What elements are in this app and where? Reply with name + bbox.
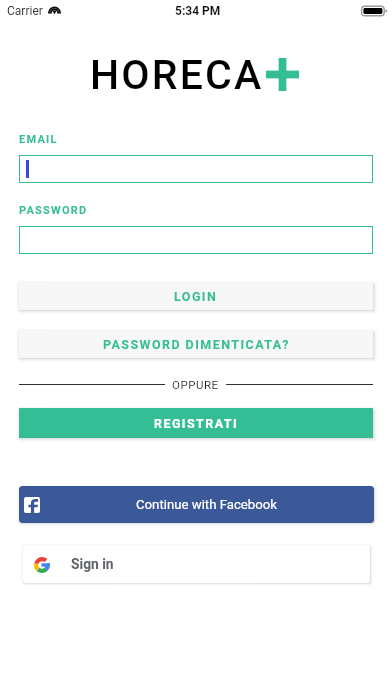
staticText: REGISTRATI <box>154 416 239 431</box>
staticText: EMAIL <box>19 133 58 146</box>
staticText: HORECA <box>90 51 264 99</box>
button[interactable]: Sign in <box>23 545 370 583</box>
staticText: Sign in <box>71 556 114 572</box>
staticText: PASSWORD DIMENTICATA? <box>103 337 290 352</box>
staticText: PASSWORD <box>19 204 88 217</box>
staticText: 5:34 PM <box>175 4 221 18</box>
button[interactable]: LOGIN <box>19 282 373 310</box>
staticText: Continue with Facebook <box>136 497 277 512</box>
staticText: OPPURE <box>172 378 219 391</box>
button[interactable] <box>19 155 373 183</box>
button[interactable]: REGISTRATI <box>19 408 373 438</box>
button[interactable]: PASSWORD DIMENTICATA? <box>19 330 373 358</box>
button[interactable] <box>19 226 373 254</box>
button[interactable]: Continue with Facebook <box>19 486 374 523</box>
staticText: LOGIN <box>174 289 218 304</box>
staticText: Carrier <box>7 4 43 18</box>
